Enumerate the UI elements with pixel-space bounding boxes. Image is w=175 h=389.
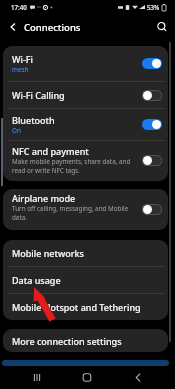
staticText: 17:40 (11, 3, 27, 11)
button[interactable]: Home (75, 366, 99, 389)
button[interactable]: Bluetooth (3, 109, 168, 140)
button[interactable]: Navigate up (5, 19, 21, 35)
button[interactable]: Wi-Fi (3, 46, 168, 81)
button[interactable]: Back (126, 366, 150, 389)
button[interactable]: Toggle (142, 155, 162, 166)
staticText: mesh (12, 65, 29, 74)
button[interactable]: Data usage (3, 267, 168, 293)
button[interactable]: Toggle (142, 58, 162, 69)
staticText: On (12, 126, 21, 135)
staticText: Turn off calling, messaging, and Mobile … (12, 204, 129, 222)
staticText: Wi-Fi (12, 53, 33, 65)
staticText: Mobile Hotspot and Tethering (12, 301, 141, 313)
staticText: Connections (24, 21, 81, 34)
staticText: Make mobile payments, share data, and re… (12, 157, 131, 175)
button[interactable]: NFC and payment (3, 141, 168, 181)
staticText: Airplane mode (12, 192, 76, 204)
button[interactable]: Toggle (142, 119, 162, 130)
button[interactable]: Mobile networks (3, 240, 168, 266)
staticText: NFC and payment (12, 145, 89, 157)
button[interactable]: Toggle (142, 204, 162, 215)
button[interactable]: Mobile Hotspot and Tethering (3, 294, 168, 320)
staticText: Data usage (12, 274, 61, 286)
button[interactable]: Recents (25, 366, 49, 389)
staticText: Wi-Fi Calling (12, 89, 65, 101)
staticText: 53% (147, 3, 160, 11)
button[interactable]: Wi-Fi Calling (3, 82, 168, 108)
button[interactable]: Airplane mode (3, 189, 168, 230)
staticText: Bluetooth (12, 114, 55, 126)
button[interactable]: Toggle (142, 90, 162, 101)
staticText: More connection settings (12, 335, 122, 347)
staticText: Mobile networks (12, 247, 84, 259)
button[interactable]: More connection settings (3, 329, 168, 352)
button[interactable]: Search (154, 19, 170, 35)
